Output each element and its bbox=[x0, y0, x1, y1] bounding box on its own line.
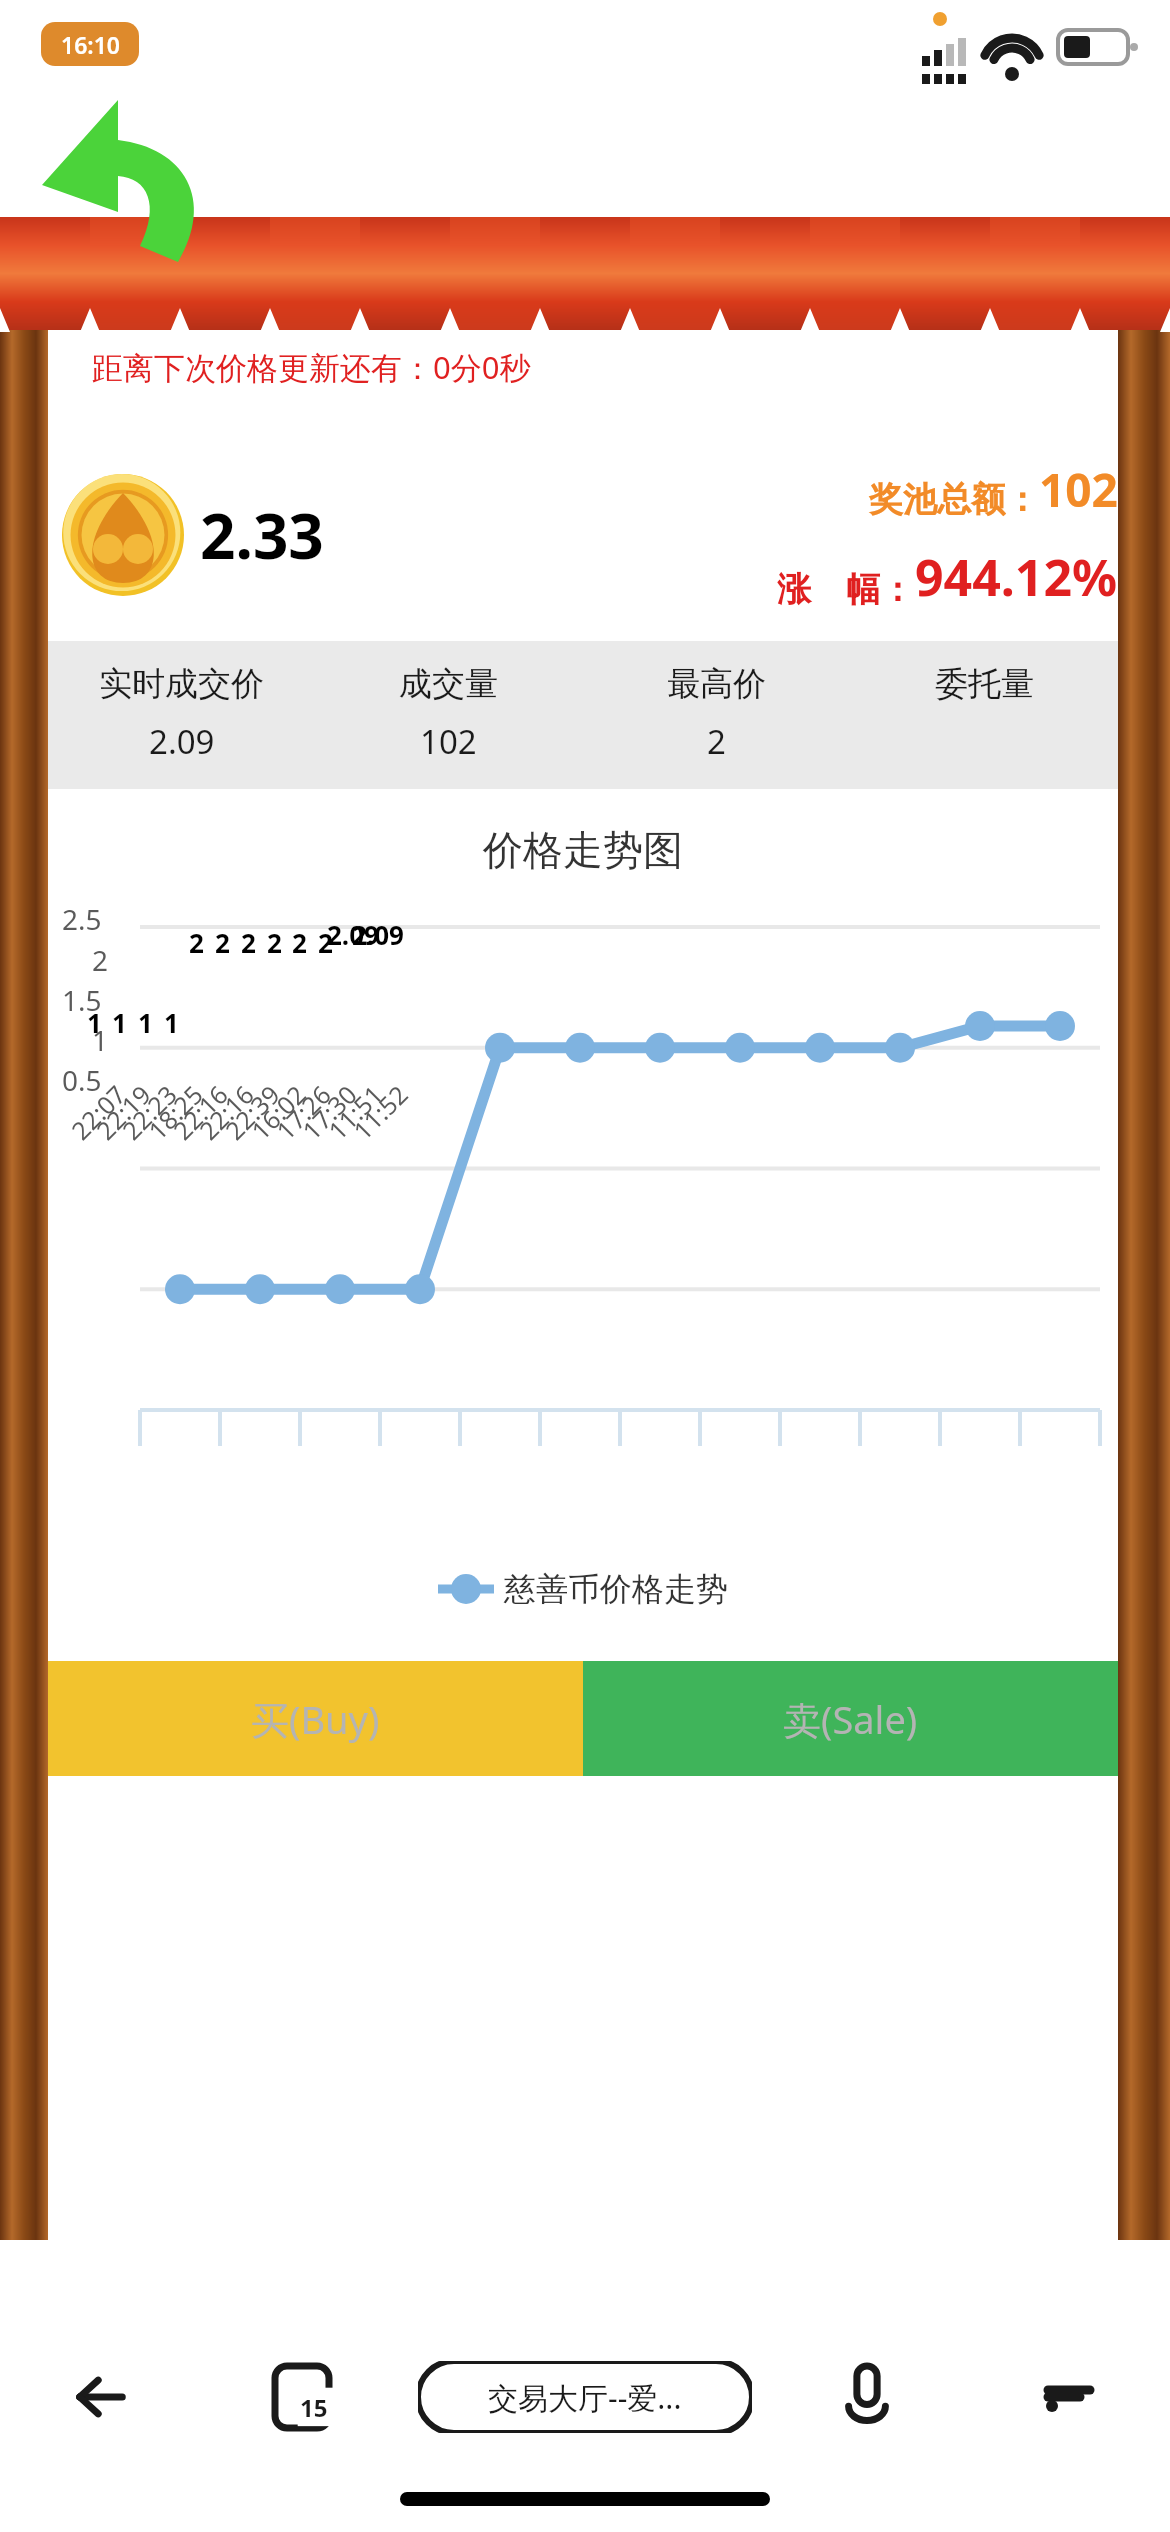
staticText: 1 bbox=[164, 1005, 179, 1040]
staticText: 11:51 bbox=[320, 1077, 390, 1147]
staticText: 2.33 bbox=[200, 493, 324, 577]
staticText: 最高价 bbox=[667, 663, 766, 705]
staticText: 2 bbox=[318, 925, 333, 960]
staticText: 22:19 bbox=[88, 1077, 158, 1147]
staticText: 0.5 bbox=[62, 1061, 102, 1099]
staticText: 1 bbox=[87, 1005, 102, 1040]
staticText: 2.09 bbox=[327, 917, 379, 952]
staticText: 16:02 bbox=[243, 1077, 313, 1147]
button[interactable]: Tabs: 15 bbox=[201, 2342, 403, 2452]
button[interactable]: Voice search bbox=[766, 2342, 968, 2452]
staticText: 买(Buy) bbox=[251, 1693, 380, 1745]
staticText: 交易大厅--爱... bbox=[488, 2377, 682, 2418]
staticText: 102 bbox=[420, 719, 477, 764]
button[interactable]: Menu bbox=[968, 2342, 1170, 2452]
staticText: 1.5 bbox=[62, 981, 102, 1019]
staticText: 1 bbox=[138, 1005, 153, 1040]
staticText: 944.12% bbox=[915, 543, 1118, 611]
staticText: 22:39 bbox=[217, 1077, 287, 1147]
staticText: 2.5 bbox=[62, 900, 102, 938]
staticText: 22:16 bbox=[191, 1077, 261, 1147]
staticText: 1 bbox=[92, 1021, 109, 1059]
staticText: 18:25 bbox=[140, 1077, 210, 1147]
staticText: 卖(Sale) bbox=[783, 1693, 918, 1745]
staticText: 17:30 bbox=[294, 1077, 364, 1147]
staticText: 涨 幅： bbox=[777, 565, 915, 611]
staticText: 2 bbox=[241, 925, 256, 960]
staticText: 1 bbox=[112, 1005, 127, 1040]
staticText: 实时成交价 bbox=[99, 663, 264, 705]
button[interactable]: 交易大厅--爱... bbox=[418, 2361, 752, 2433]
staticText: 2.09 bbox=[352, 917, 404, 952]
staticText: 距离下次价格更新还有：0分0秒 bbox=[92, 346, 531, 388]
staticText: 2 bbox=[92, 941, 109, 979]
staticText: 委托量 bbox=[935, 663, 1034, 705]
staticText: 15 bbox=[300, 2391, 328, 2424]
staticText: 2.09 bbox=[149, 719, 215, 764]
staticText: 2 bbox=[707, 719, 726, 764]
staticText: 16:10 bbox=[61, 29, 120, 60]
staticText: 价格走势图 bbox=[483, 825, 683, 875]
staticText: 22:07 bbox=[63, 1077, 133, 1147]
staticText: 成交量 bbox=[399, 663, 498, 705]
staticText: 2 bbox=[267, 925, 282, 960]
staticText: 11:52 bbox=[345, 1077, 415, 1147]
staticText: 2 bbox=[189, 925, 204, 960]
staticText: 17:26 bbox=[268, 1077, 338, 1147]
staticText: 22:16 bbox=[165, 1077, 235, 1147]
staticText: 慈善币价格走势 bbox=[504, 1569, 728, 1609]
staticText: 奖池总额： bbox=[869, 478, 1039, 521]
button[interactable]: 买(Buy) bbox=[48, 1661, 583, 1776]
staticText: 2 bbox=[215, 925, 230, 960]
staticText: 2 bbox=[292, 925, 307, 960]
button[interactable]: Back bbox=[0, 2342, 201, 2452]
button[interactable]: 卖(Sale) bbox=[583, 1661, 1118, 1776]
staticText: 22:23 bbox=[114, 1077, 184, 1147]
staticText: 102 bbox=[1039, 458, 1118, 521]
